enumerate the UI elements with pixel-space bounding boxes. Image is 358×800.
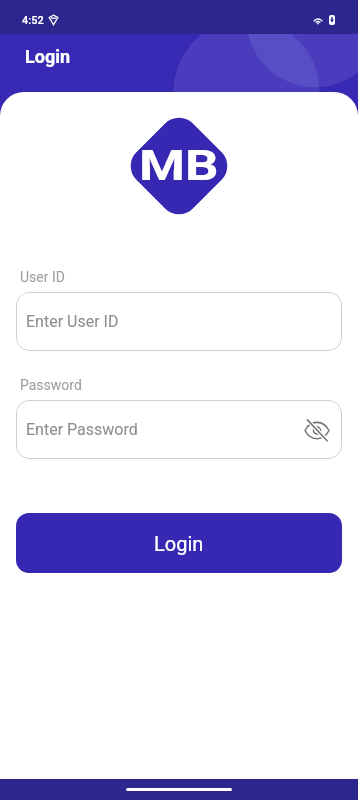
staticText: Enter User ID (26, 312, 119, 331)
staticText: Login (25, 46, 71, 67)
staticText: Login (154, 532, 204, 555)
staticText: Password (20, 377, 82, 393)
button[interactable]: Toggle password visibility (298, 411, 336, 449)
button[interactable]: Enter Password (16, 400, 342, 459)
staticText: MB (139, 141, 219, 190)
staticText: Enter Password (26, 420, 138, 439)
staticText: 4:52 (22, 14, 44, 27)
button[interactable]: Login (16, 513, 342, 573)
button[interactable]: Enter User ID (16, 292, 342, 351)
staticText: User ID (20, 269, 65, 285)
